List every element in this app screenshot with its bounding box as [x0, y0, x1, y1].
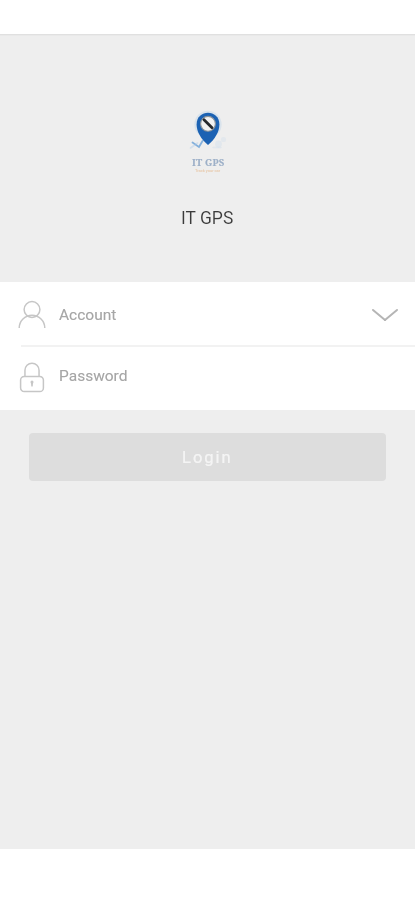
other: Password — [20, 362, 44, 391]
button[interactable]: Show saved accounts — [364, 292, 406, 338]
staticText: IT GPS — [192, 156, 225, 169]
staticText: IT GPS — [181, 208, 234, 229]
staticText: Password — [59, 367, 128, 385]
other: Show accounts — [372, 309, 398, 321]
button[interactable]: Account — [0, 282, 415, 345]
button[interactable]: Password — [0, 347, 415, 410]
staticText: Login — [182, 448, 233, 467]
other: Account — [20, 301, 44, 328]
staticText: Account — [59, 306, 117, 324]
staticText: Track your car — [195, 168, 221, 173]
